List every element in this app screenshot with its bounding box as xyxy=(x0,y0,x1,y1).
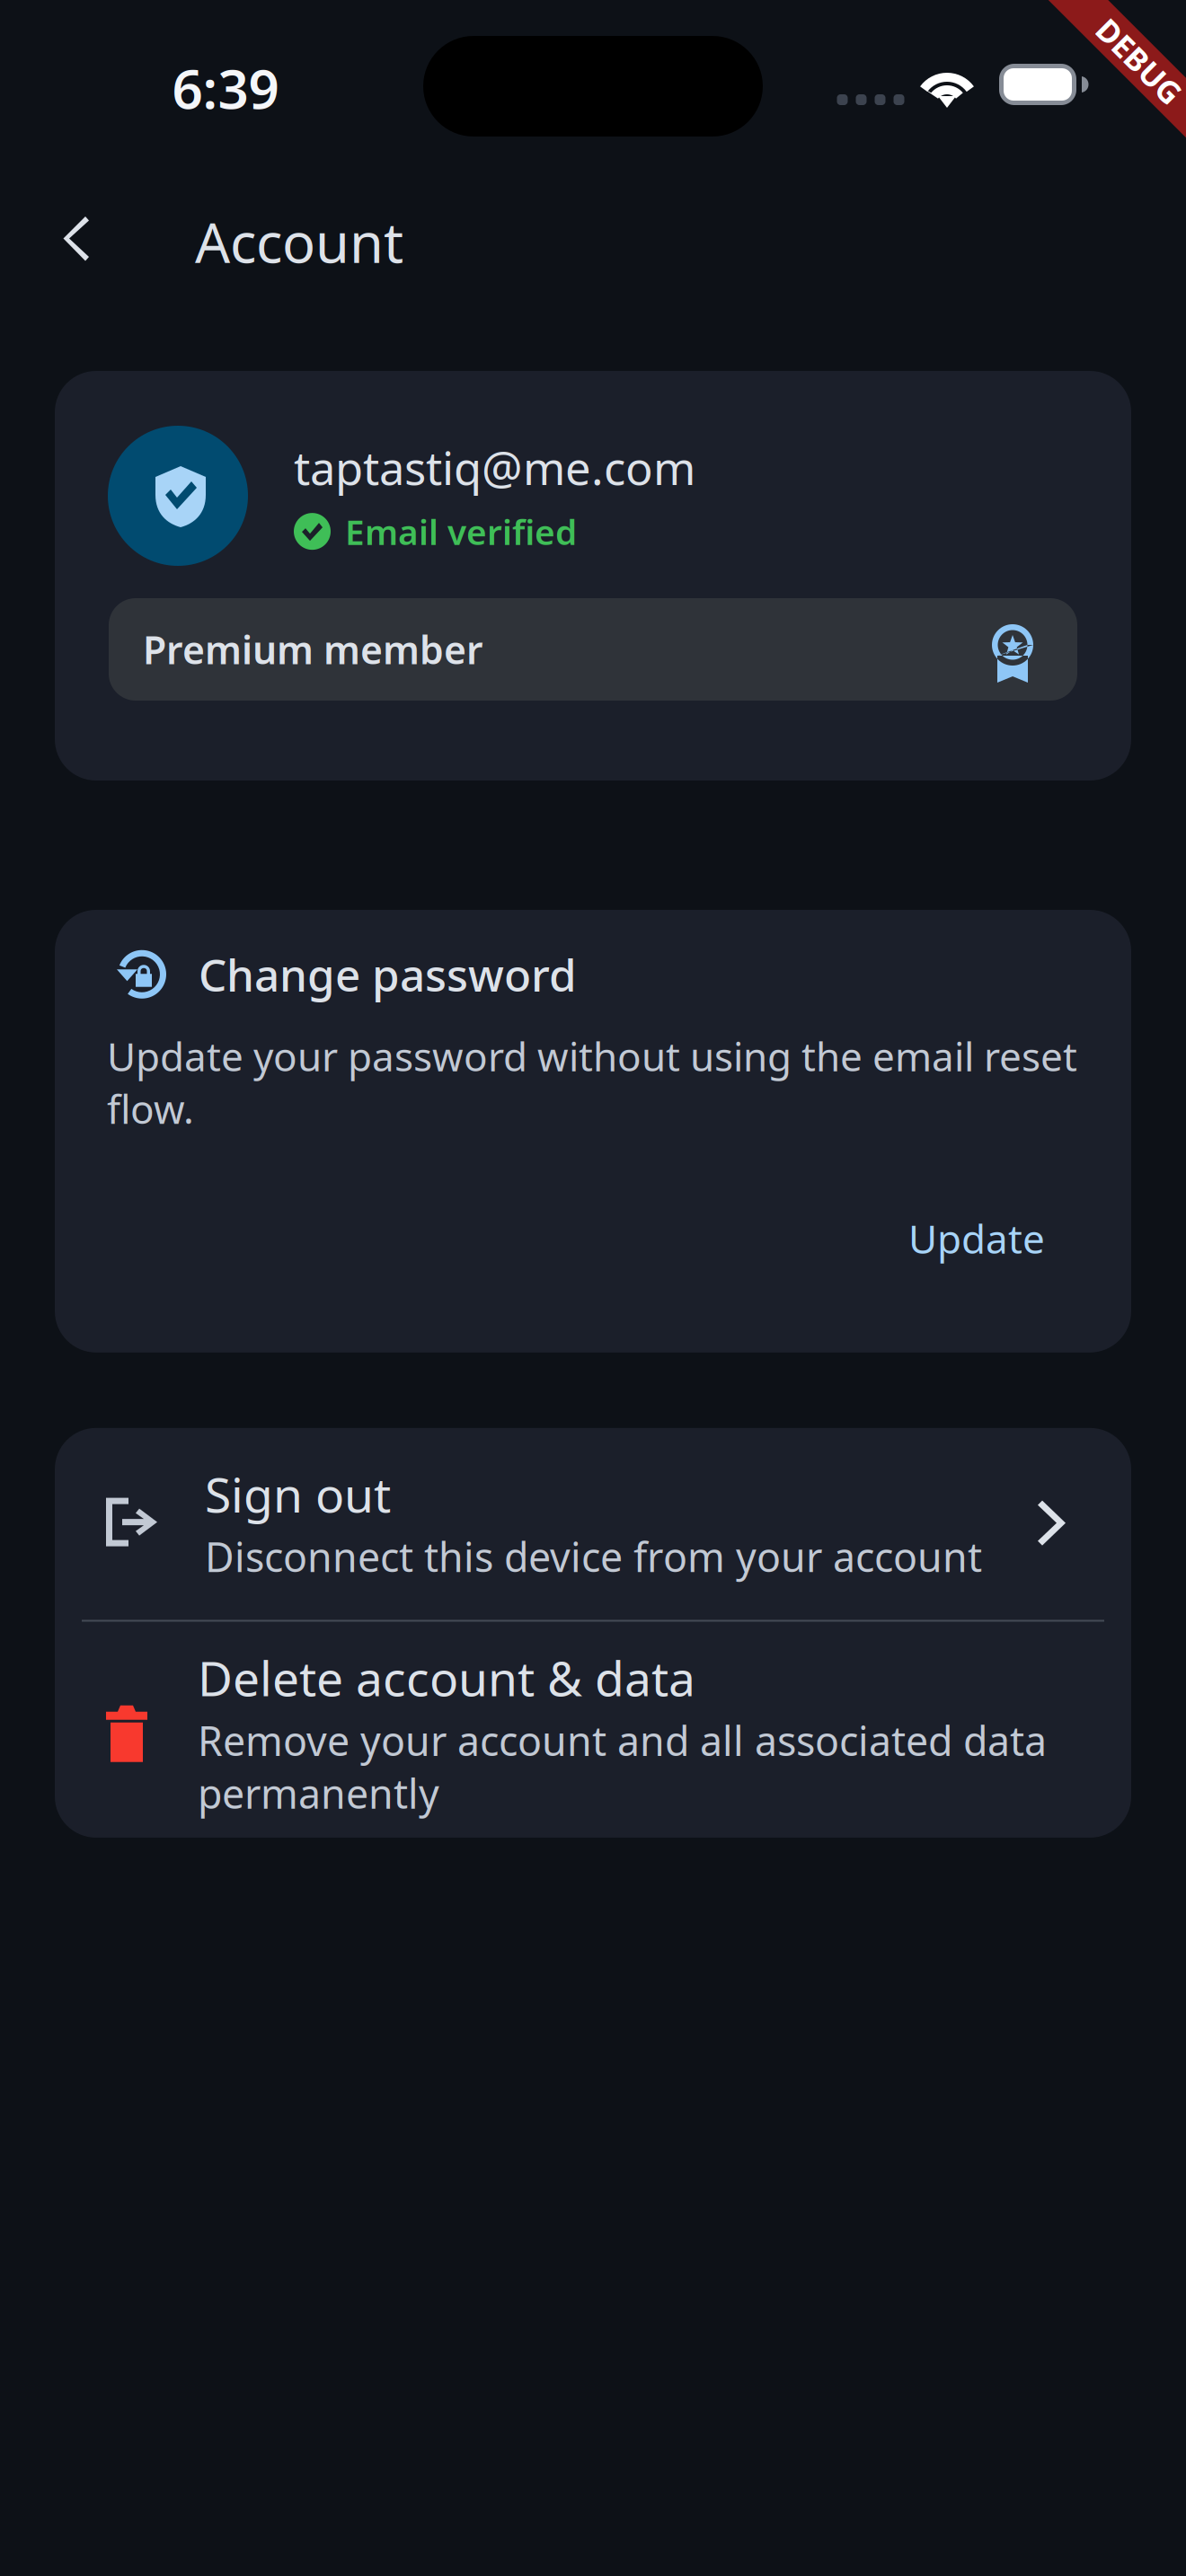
button[interactable]: Delete account & data xyxy=(55,1622,1131,1838)
staticText: Remove your account and all associated d… xyxy=(198,1713,1047,1821)
staticText: Update your password without using the e… xyxy=(107,1030,1077,1135)
button[interactable]: Sign out xyxy=(55,1428,1131,1620)
staticText: Account xyxy=(195,205,403,278)
staticText: Email verified xyxy=(345,508,577,554)
staticText: 6:39 xyxy=(172,52,279,124)
staticText: Update xyxy=(908,1212,1045,1264)
staticText: DEBUG xyxy=(1086,40,1186,82)
staticText: Premium member xyxy=(143,624,483,675)
staticText: Disconnect this device from your account xyxy=(205,1529,982,1584)
button[interactable]: Update xyxy=(896,1198,1058,1279)
staticText: Delete account & data xyxy=(198,1646,695,1710)
button[interactable]: Back xyxy=(28,189,121,289)
staticText: taptastiq@me.com xyxy=(294,437,695,498)
staticText: Change password xyxy=(199,945,577,1004)
staticText: Sign out xyxy=(205,1462,391,1526)
